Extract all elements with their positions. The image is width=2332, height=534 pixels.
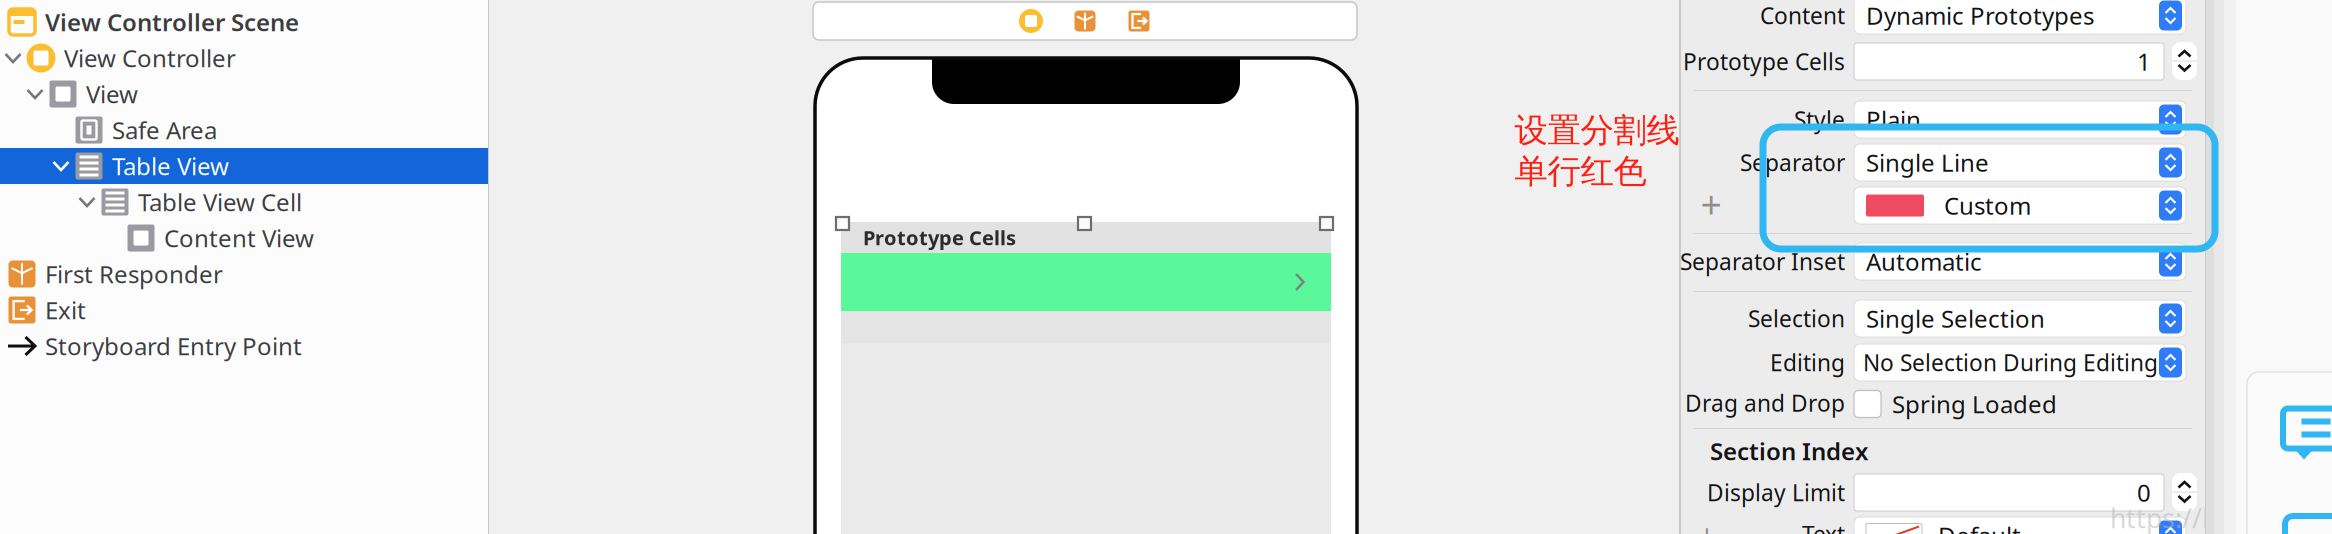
staticText: https://blog.csdn.net/axuangg [2110,500,2332,534]
button[interactable]: Comment [2283,408,2332,467]
staticText: Automatic [1866,246,1982,277]
staticText: Selection [1748,303,1845,333]
staticText: Storyboard Entry Point [45,330,302,362]
button[interactable]: Stepper [2172,42,2197,80]
staticText: Custom [1944,190,2031,221]
button[interactable]: Storyboard Entry Point [0,328,488,364]
staticText: 设置分割线 [1514,110,1679,151]
staticText: 0 [2137,477,2151,508]
button[interactable]: Table View [0,148,488,184]
staticText: Style [1794,104,1845,134]
button[interactable]: Table View Cell [0,184,488,220]
staticText: Single Selection [1866,303,2045,334]
button[interactable]: Plain [1854,101,2186,138]
staticText: First Responder [45,258,223,290]
button[interactable]: First Responder [1072,8,1098,34]
staticText: 1 [2137,46,2151,77]
staticText: View Controller [64,42,236,74]
button[interactable]: Spring Loaded [1854,388,2134,420]
staticText: Separator Inset [1680,246,1845,276]
button[interactable]: View [0,76,488,112]
staticText: Exit [45,294,86,326]
staticText: Text [1802,519,1845,534]
staticText: Display Limit [1707,477,1845,507]
button[interactable]: Content View [0,220,488,256]
staticText: Prototype Cells [863,224,1016,251]
button[interactable]: View Controller [1018,8,1044,34]
staticText: 单行红色 [1514,151,1646,192]
staticText: Single Line [1866,147,1989,178]
staticText: + [1698,514,1715,534]
button[interactable]: No Selection During Editing [1854,344,2186,381]
staticText: Plain [1866,104,1921,135]
staticText: Content [1760,0,1845,30]
button[interactable]: First Responder [0,256,488,292]
staticText: Safe Area [112,114,217,146]
staticText: Table View Cell [138,186,302,218]
button[interactable]: Automatic [1854,243,2186,280]
button[interactable]: Custom [1854,187,2186,224]
button[interactable]: Stepper [2172,473,2197,511]
staticText: Default [1938,520,2021,534]
button[interactable]: Add [1700,179,1721,229]
staticText: Prototype Cells [1683,46,1845,76]
button[interactable]: Safe Area [0,112,488,148]
staticText: Dynamic Prototypes [1866,0,2094,31]
staticText: View Controller Scene [45,6,299,38]
button[interactable]: Single Selection [1854,300,2186,337]
staticText: Editing [1770,347,1845,377]
button[interactable]: Single Line [1854,144,2186,181]
button[interactable]: Dynamic Prototypes [1854,0,2186,34]
staticText: Section Index [1710,435,1868,467]
button[interactable]: Default [1854,517,2186,534]
staticText: Drag and Drop [1685,388,1845,418]
button[interactable]: Exit [1126,8,1152,34]
button[interactable]: Exit [0,292,488,328]
staticText: No Selection During Editing [1863,347,2158,377]
staticText: Spring Loaded [1892,388,2057,420]
staticText: View [86,78,138,110]
staticText: Table View [112,150,229,182]
button[interactable]: View Controller [0,40,488,76]
staticText: Content View [164,222,314,254]
button[interactable]: View Controller Scene [0,4,488,40]
staticText: Separator [1740,147,1845,177]
staticText: + [1700,179,1721,229]
